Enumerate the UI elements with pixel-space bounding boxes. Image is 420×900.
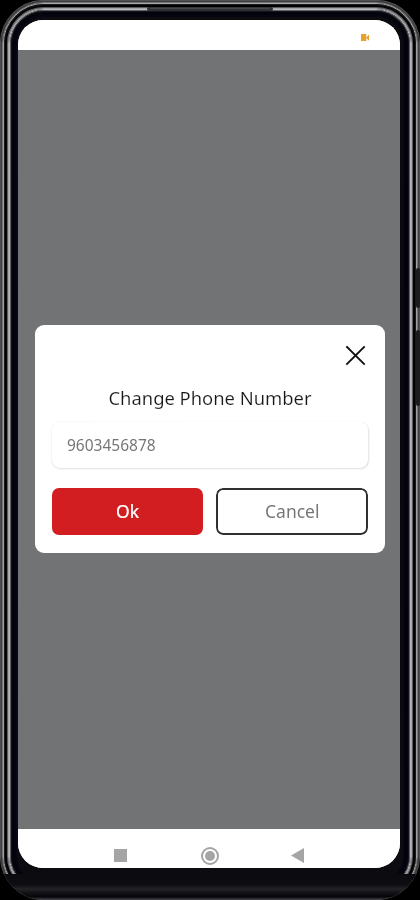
button[interactable]: Ok [52, 488, 203, 535]
button[interactable]: Home [194, 840, 225, 868]
button[interactable]: Recents [105, 840, 136, 868]
button[interactable]: 9603456878 [52, 422, 368, 468]
staticText: 9603456878 [67, 434, 156, 455]
staticText: Cancel [265, 499, 320, 523]
button[interactable]: Close [336, 336, 374, 374]
button[interactable]: Back [282, 840, 313, 868]
button[interactable]: Cancel [216, 488, 368, 535]
staticText: Change Phone Number [35, 385, 385, 410]
staticText: Ok [116, 499, 140, 523]
